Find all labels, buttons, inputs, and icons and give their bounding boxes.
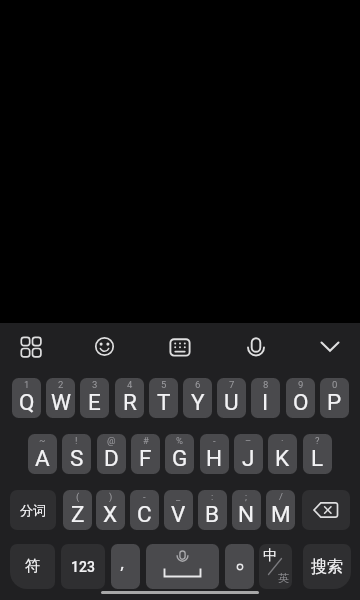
- button[interactable]: -: [200, 434, 229, 474]
- button[interactable]: 9: [286, 378, 315, 418]
- staticText: T: [157, 389, 171, 415]
- button[interactable]: 1: [12, 378, 41, 418]
- staticText: ,: [120, 551, 125, 574]
- staticText: /: [279, 491, 283, 502]
- button[interactable]: 3: [80, 378, 109, 418]
- button[interactable]: 7: [217, 378, 246, 418]
- staticText: 8: [263, 379, 269, 390]
- button[interactable]: [302, 490, 350, 530]
- button[interactable]: [18, 334, 44, 360]
- button[interactable]: ?: [303, 434, 332, 474]
- staticText: 0: [332, 379, 338, 390]
- staticText: Z: [71, 501, 85, 527]
- button[interactable]: [92, 334, 118, 360]
- staticText: U: [224, 389, 239, 415]
- button[interactable]: ): [96, 490, 125, 530]
- staticText: 搜索: [311, 557, 343, 577]
- staticText: O: [293, 389, 309, 415]
- staticText: G: [172, 445, 188, 471]
- button[interactable]: ·: [268, 434, 297, 474]
- button[interactable]: 中: [259, 544, 292, 589]
- staticText: H: [206, 445, 223, 471]
- button[interactable]: :: [198, 490, 227, 530]
- staticText: 英: [278, 571, 289, 585]
- staticText: 6: [195, 379, 201, 390]
- staticText: W: [51, 389, 71, 415]
- staticText: A: [35, 445, 50, 471]
- staticText: ~: [39, 435, 46, 446]
- button[interactable]: #: [131, 434, 160, 474]
- button[interactable]: _: [164, 490, 193, 530]
- staticText: C: [137, 501, 152, 527]
- staticText: ·: [281, 435, 284, 446]
- button[interactable]: 5: [149, 378, 178, 418]
- staticText: I: [262, 389, 269, 415]
- staticText: P: [327, 389, 342, 415]
- button[interactable]: [225, 544, 254, 589]
- staticText: ;: [245, 491, 248, 502]
- button[interactable]: [146, 544, 219, 589]
- button[interactable]: [167, 334, 193, 360]
- staticText: 4: [127, 379, 133, 390]
- staticText: B: [205, 501, 220, 527]
- button[interactable]: –: [234, 434, 263, 474]
- staticText: K: [275, 445, 290, 471]
- staticText: –: [245, 435, 252, 446]
- staticText: 5: [161, 379, 167, 390]
- staticText: @: [107, 435, 116, 446]
- staticText: !: [75, 435, 78, 446]
- button[interactable]: 分词: [10, 490, 56, 530]
- staticText: D: [104, 445, 119, 471]
- staticText: ): [109, 491, 113, 502]
- staticText: R: [123, 389, 137, 415]
- button[interactable]: -: [130, 490, 159, 530]
- button[interactable]: [242, 334, 269, 361]
- staticText: M: [271, 501, 291, 527]
- button[interactable]: [317, 334, 343, 360]
- staticText: Y: [191, 389, 205, 415]
- button[interactable]: 0: [320, 378, 349, 418]
- button[interactable]: ~: [28, 434, 57, 474]
- button[interactable]: @: [97, 434, 126, 474]
- staticText: 符: [25, 557, 40, 576]
- staticText: (: [76, 491, 80, 502]
- button[interactable]: ;: [232, 490, 261, 530]
- staticText: :: [211, 491, 214, 502]
- staticText: 3: [92, 379, 98, 390]
- button[interactable]: (: [63, 490, 92, 530]
- staticText: ?: [315, 435, 320, 446]
- staticText: Q: [19, 389, 35, 415]
- staticText: V: [171, 501, 186, 527]
- staticText: 1: [24, 379, 30, 390]
- staticText: L: [311, 445, 324, 471]
- button[interactable]: 符: [10, 544, 55, 589]
- staticText: 7: [229, 379, 235, 390]
- button[interactable]: ,: [111, 544, 140, 589]
- staticText: X: [103, 501, 118, 527]
- staticText: %: [176, 435, 183, 446]
- button[interactable]: 6: [183, 378, 212, 418]
- staticText: 2: [58, 379, 64, 390]
- button[interactable]: 4: [115, 378, 144, 418]
- button[interactable]: 123: [61, 544, 105, 589]
- staticText: 分词: [20, 502, 46, 518]
- staticText: F: [139, 445, 152, 471]
- staticText: -: [213, 435, 216, 446]
- staticText: 123: [71, 559, 95, 575]
- button[interactable]: 搜索: [303, 544, 351, 589]
- button[interactable]: /: [266, 490, 295, 530]
- button[interactable]: %: [165, 434, 194, 474]
- staticText: E: [88, 389, 101, 415]
- staticText: J: [242, 445, 255, 471]
- staticText: N: [238, 501, 255, 527]
- staticText: 中: [263, 547, 277, 565]
- staticText: S: [70, 445, 84, 471]
- button[interactable]: 8: [251, 378, 280, 418]
- button[interactable]: 2: [46, 378, 75, 418]
- staticText: -: [143, 491, 146, 502]
- staticText: _: [176, 491, 181, 502]
- staticText: #: [143, 435, 149, 446]
- staticText: 9: [298, 379, 304, 390]
- button[interactable]: !: [62, 434, 91, 474]
